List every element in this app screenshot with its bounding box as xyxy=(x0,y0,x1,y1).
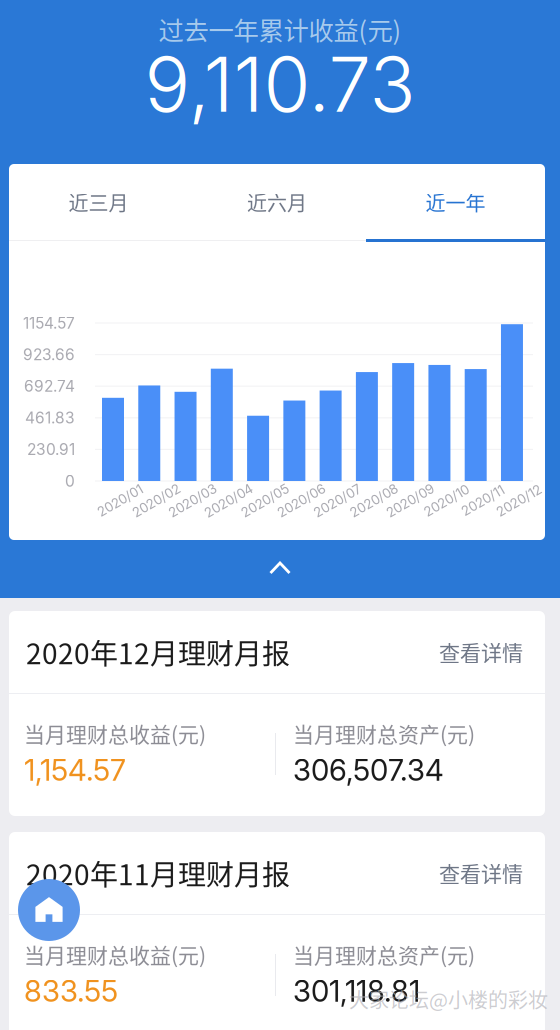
button[interactable]: 2020年12月理财月报 xyxy=(9,611,545,693)
staticText: 306,507.34 xyxy=(293,752,444,788)
staticText: 1,154.57 xyxy=(24,752,126,788)
staticText: 近一年 xyxy=(426,187,486,216)
staticText: 692.74 xyxy=(24,377,75,395)
staticText: 2020/04 xyxy=(202,492,256,508)
staticText: 2020/10 xyxy=(421,492,471,508)
staticText: 大家论坛@小楼的彩妆 xyxy=(349,984,548,1013)
staticText: 9,110.73 xyxy=(144,38,415,130)
staticText: 2020/08 xyxy=(347,492,400,508)
staticText: 2020/01 xyxy=(95,492,145,508)
staticText: 2020/02 xyxy=(130,492,183,508)
button[interactable]: Collapse xyxy=(235,548,325,588)
staticText: 833.55 xyxy=(24,973,118,1009)
button[interactable]: Home xyxy=(18,879,80,941)
staticText: 1154.57 xyxy=(23,314,75,332)
staticText: 0 xyxy=(65,472,75,490)
staticText: 923.66 xyxy=(23,345,75,364)
staticText: 查看详情 xyxy=(439,858,523,888)
staticText: 近三月 xyxy=(68,187,128,216)
staticText: 近六月 xyxy=(247,187,307,216)
staticText: 301,118.81 xyxy=(293,973,420,1009)
staticText: 2020/03 xyxy=(166,492,219,508)
staticText: 当月理财总收益(元) xyxy=(24,939,206,969)
staticText: 2020/07 xyxy=(311,492,364,508)
staticText: 2020/06 xyxy=(275,492,328,508)
button[interactable]: 近一年 xyxy=(366,164,545,240)
staticText: 查看详情 xyxy=(439,637,523,667)
staticText: 2020/05 xyxy=(239,492,292,508)
staticText: 2020/12 xyxy=(494,492,544,508)
staticText: 2020/09 xyxy=(384,492,437,508)
button[interactable]: 2020年11月理财月报 xyxy=(9,832,545,914)
staticText: 230.91 xyxy=(27,440,75,459)
staticText: 2020年12月理财月报 xyxy=(26,632,290,672)
staticText: 2020/11 xyxy=(459,492,506,508)
staticText: 当月理财总资产(元) xyxy=(293,718,475,748)
button[interactable]: 近六月 xyxy=(188,164,366,240)
button[interactable]: 近三月 xyxy=(9,164,188,240)
staticText: 当月理财总收益(元) xyxy=(24,718,206,748)
staticText: 2020年11月理财月报 xyxy=(26,853,290,893)
staticText: 461.83 xyxy=(25,408,75,427)
staticText: 当月理财总资产(元) xyxy=(293,939,475,969)
staticText: 过去一年累计收益(元) xyxy=(158,11,401,47)
